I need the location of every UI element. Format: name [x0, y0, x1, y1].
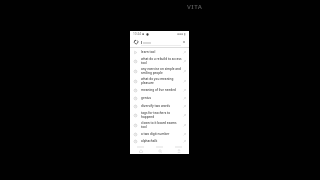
staticText: tags for teachers to happend: [141, 111, 182, 119]
staticText: what do u rebuild to access tool: [141, 57, 182, 65]
button[interactable]: diversify two words: [130, 102, 189, 110]
staticText: any exercise on simple and smiling peopl…: [141, 67, 182, 75]
staticText: 10:24 ▪: [133, 32, 145, 36]
button[interactable]: More options: [182, 40, 186, 44]
button[interactable]: a two digit number: [130, 130, 189, 138]
button[interactable]: Home: [132, 146, 149, 153]
staticText: what do you meaning pleasure: [141, 77, 182, 85]
button[interactable]: what do you meaning pleasure: [130, 76, 189, 86]
staticText: learn tool: [141, 50, 182, 54]
staticText: VITA: [187, 3, 203, 11]
staticText: alphachalk: [141, 139, 182, 143]
button[interactable]: clown to it board exams tool: [130, 120, 189, 130]
button[interactable]: Profile: [170, 146, 187, 153]
staticText: genius: [141, 96, 182, 100]
button[interactable]: meaning of live needed: [130, 86, 189, 94]
button[interactable]: learn tool: [130, 48, 189, 56]
button[interactable]: genius: [130, 94, 189, 102]
button[interactable]: what do u rebuild to access tool: [130, 56, 189, 66]
button[interactable]: alphachalk: [130, 138, 189, 144]
staticText: a two digit number: [141, 132, 182, 136]
staticText: clown to it board exams tool: [141, 121, 182, 129]
button[interactable]: Back: [133, 39, 139, 45]
button[interactable]: Explore: [151, 146, 168, 153]
staticText: ▪▪▪ ▮: [177, 32, 186, 36]
staticText: diversify two words: [141, 104, 182, 108]
staticText: meaning of live needed: [141, 88, 182, 92]
button[interactable]: tags for teachers to happend: [130, 110, 189, 120]
button[interactable]: any exercise on simple and smiling peopl…: [130, 66, 189, 76]
